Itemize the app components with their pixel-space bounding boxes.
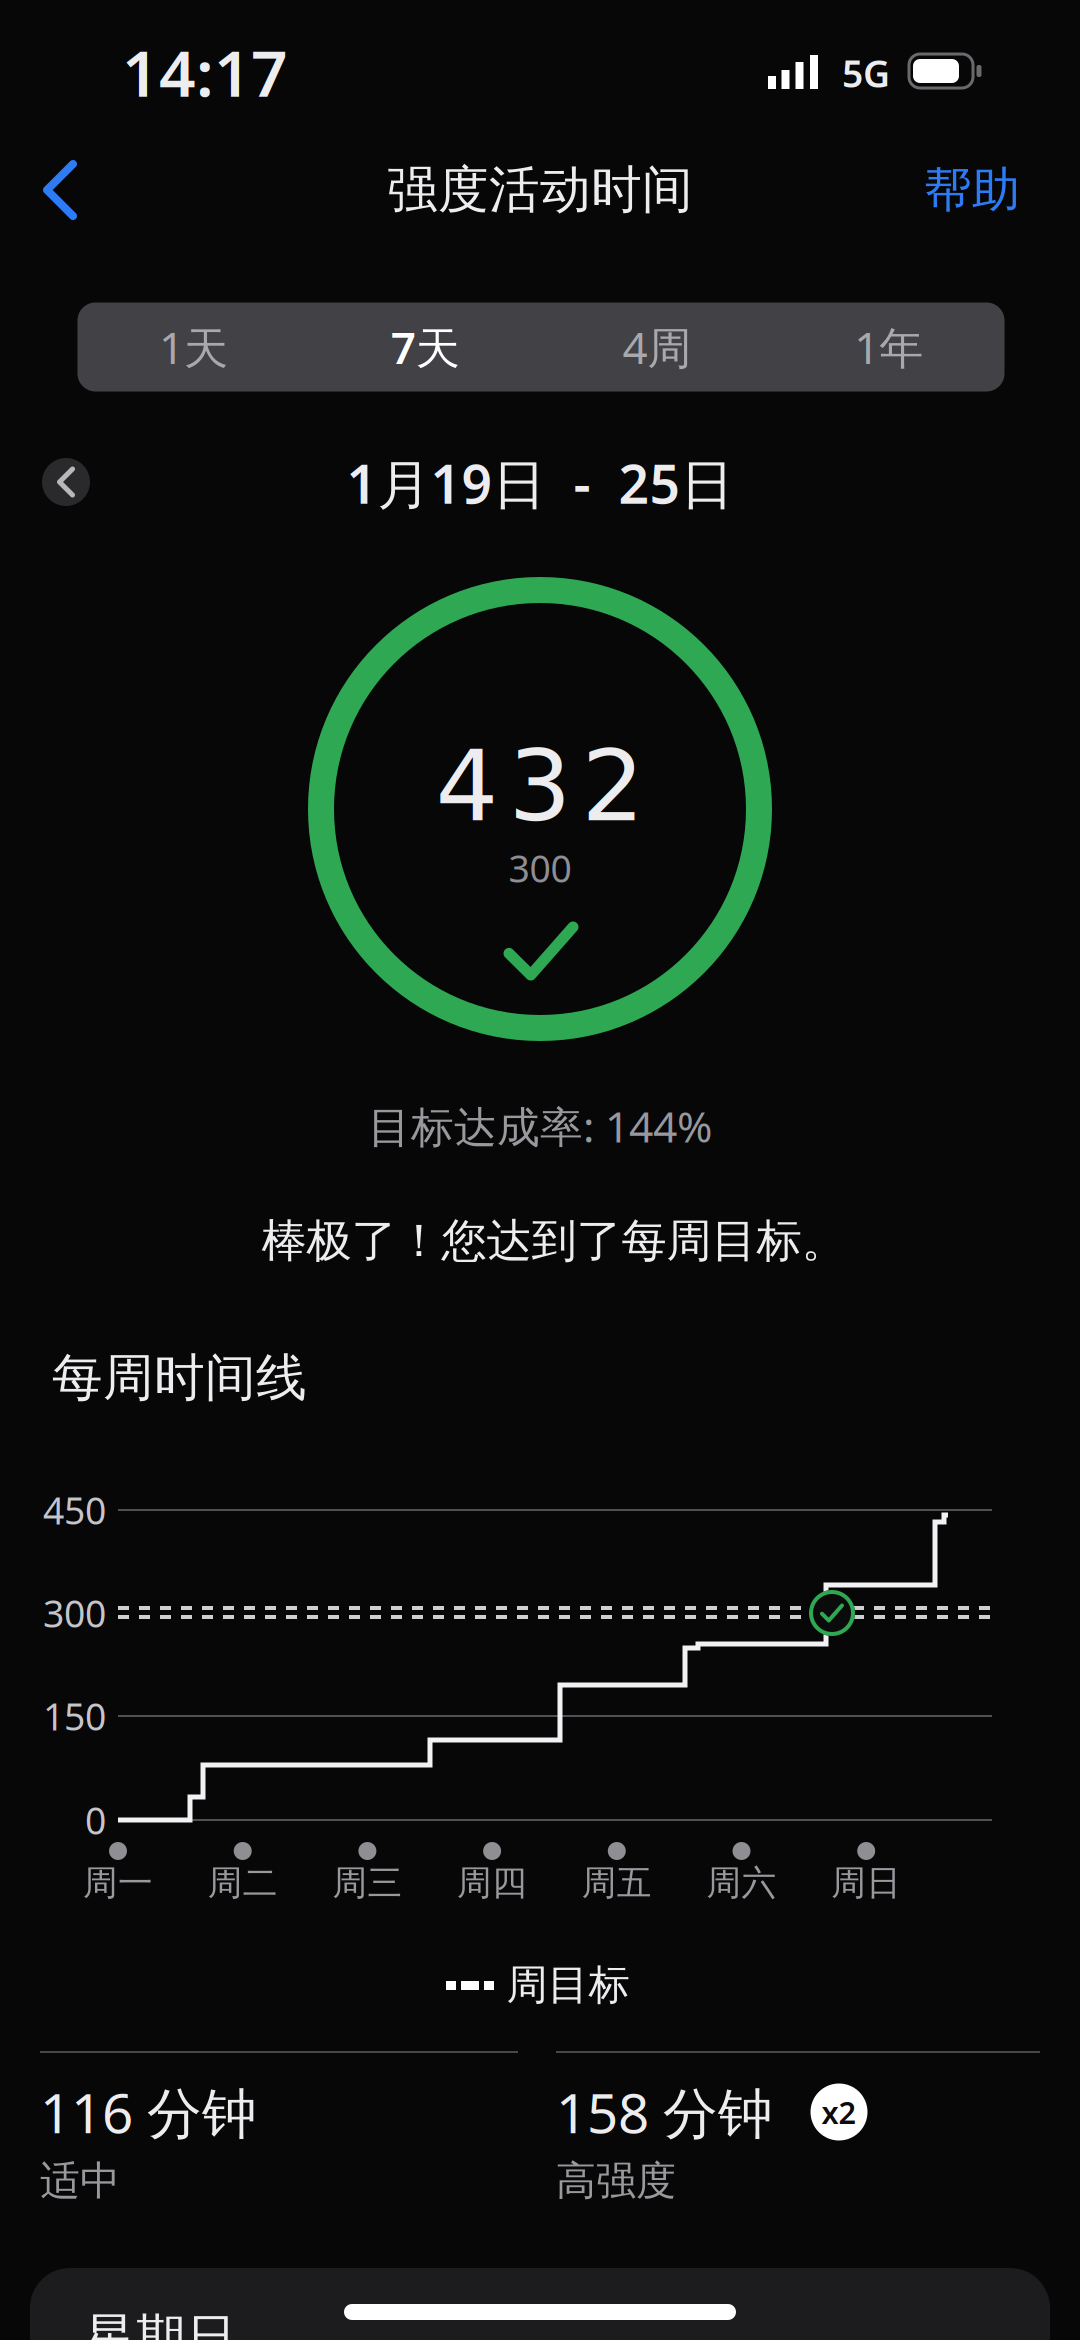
- staticText: 周三: [332, 1862, 402, 1904]
- staticText: 适中: [40, 2156, 120, 2205]
- staticText: 目标达成率: 144%: [368, 1098, 712, 1154]
- button[interactable]: 1天: [77, 302, 309, 391]
- staticText: 帮助: [924, 160, 1020, 219]
- button[interactable]: 7天: [309, 302, 541, 391]
- staticText: 周二: [208, 1862, 278, 1904]
- staticText: 星期日: [84, 2307, 237, 2340]
- staticText: 150: [43, 1691, 106, 1741]
- staticText: 5G: [842, 48, 890, 98]
- staticText: 1月19日 - 25日: [346, 448, 733, 518]
- button[interactable]: [38, 454, 94, 510]
- staticText: 300: [508, 843, 571, 893]
- staticText: 周日: [831, 1862, 901, 1904]
- button[interactable]: 4周: [541, 302, 773, 391]
- staticText: x2: [821, 2092, 856, 2132]
- staticText: 14:17: [122, 29, 288, 114]
- staticText: 周六: [706, 1862, 776, 1904]
- staticText: 4周: [622, 318, 691, 376]
- staticText: 周四: [457, 1862, 527, 1904]
- staticText: 强度活动时间: [387, 159, 693, 221]
- staticText: 7天: [391, 318, 460, 376]
- staticText: 4 3 2: [435, 729, 644, 843]
- staticText: 高强度: [556, 2156, 676, 2205]
- staticText: 周一: [83, 1862, 153, 1904]
- staticText: 每周时间线: [52, 1347, 307, 1409]
- staticText: 周五: [582, 1862, 652, 1904]
- button[interactable]: [25, 150, 95, 230]
- staticText: 450: [43, 1485, 106, 1535]
- staticText: 116 分钟: [40, 2076, 257, 2148]
- staticText: 300: [43, 1588, 106, 1638]
- staticText: 棒极了！您达到了每周目标。: [261, 1213, 846, 1269]
- staticText: 1天: [159, 318, 228, 376]
- staticText: 周目标: [506, 1960, 629, 2010]
- staticText: 158 分钟: [556, 2076, 773, 2148]
- staticText: 1年: [854, 318, 923, 376]
- staticText: 0: [85, 1795, 106, 1845]
- button[interactable]: 1年: [773, 302, 1005, 391]
- button[interactable]: 帮助: [902, 150, 1042, 230]
